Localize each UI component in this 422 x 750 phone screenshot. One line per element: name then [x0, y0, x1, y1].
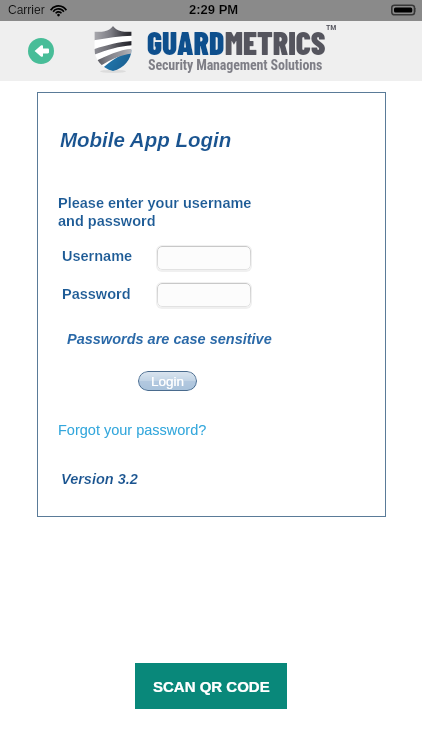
- staticText: Passwords are case sensitive: [67, 331, 272, 347]
- staticText: Version 3.2: [61, 471, 138, 487]
- button[interactable]: SCAN QR CODE: [135, 663, 287, 709]
- staticText: Password: [62, 286, 131, 302]
- staticText: SCAN QR CODE: [153, 678, 270, 695]
- staticText: Security Management Solutions: [148, 57, 323, 73]
- button[interactable]: Forgot your password?: [58, 422, 207, 438]
- button[interactable]: [157, 283, 251, 307]
- staticText: Please enter your username and password: [58, 195, 252, 229]
- staticText: GUARD: [147, 23, 225, 61]
- staticText: Forgot your password?: [58, 422, 207, 438]
- staticText: Login: [151, 374, 185, 389]
- staticText: 2:29 PM: [189, 2, 239, 17]
- staticText: Mobile App Login: [60, 128, 232, 151]
- staticText: Carrier: [8, 3, 45, 16]
- staticText: METRICS: [225, 23, 326, 61]
- staticText: TM: [326, 23, 337, 32]
- staticText: Username: [62, 248, 133, 264]
- button[interactable]: Back: [28, 38, 54, 64]
- button[interactable]: [157, 246, 251, 270]
- button[interactable]: Login: [138, 371, 197, 391]
